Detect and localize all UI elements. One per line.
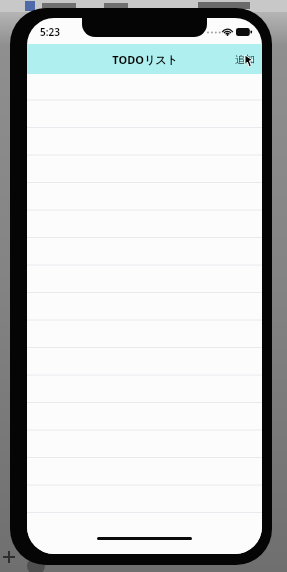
button[interactable]: 追加 xyxy=(228,47,262,72)
other: Pointer xyxy=(245,55,253,67)
staticText: TODOリスト xyxy=(112,52,178,67)
staticText: 追加 xyxy=(235,53,255,66)
staticText: 5:23 xyxy=(40,25,60,39)
